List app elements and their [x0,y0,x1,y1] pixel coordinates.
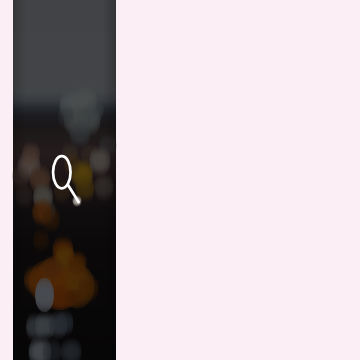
button[interactable]: Search [49,150,97,210]
